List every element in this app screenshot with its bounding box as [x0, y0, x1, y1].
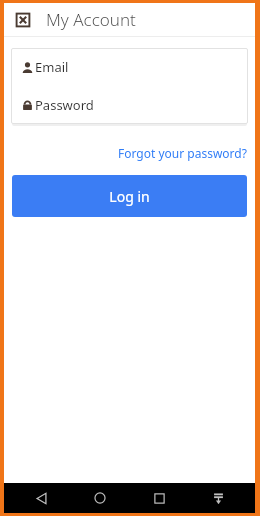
button[interactable]: Hide keyboard [196, 483, 240, 513]
button[interactable]: Close [10, 7, 36, 33]
staticText: Email [35, 58, 69, 76]
button[interactable]: Home [78, 483, 122, 513]
staticText: Password [35, 96, 94, 114]
staticText: My Account [46, 8, 136, 31]
staticText: Log in [109, 187, 150, 206]
button[interactable]: Recent apps [137, 483, 181, 513]
button[interactable]: Log in [12, 175, 247, 217]
button[interactable]: Email [11, 48, 248, 86]
button[interactable]: Back [19, 483, 63, 513]
staticText: Forgot your password? [118, 145, 247, 161]
button[interactable]: Password [11, 86, 248, 124]
button[interactable]: Forgot your password? [118, 144, 255, 162]
